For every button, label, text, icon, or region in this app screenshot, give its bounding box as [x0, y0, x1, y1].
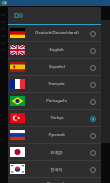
staticText: Español — [49, 64, 65, 70]
button[interactable]: Cancel — [8, 178, 101, 183]
button[interactable]: Português — [8, 93, 101, 109]
staticText: 한국어 — [50, 167, 63, 172]
button[interactable]: Español — [8, 59, 101, 75]
button[interactable]: Türkçe — [8, 110, 101, 126]
button[interactable]: 한국어 — [8, 161, 101, 177]
staticText: English — [49, 47, 64, 53]
staticText: Português — [46, 98, 67, 104]
staticText: 日本語 — [50, 150, 63, 155]
staticText: Français — [48, 81, 65, 87]
staticText: Türkçe — [50, 115, 64, 121]
button[interactable]: 日本語 — [8, 144, 101, 160]
button[interactable]: Français — [8, 76, 101, 92]
staticText: Deutsch(Deutschland) — [35, 30, 79, 36]
button[interactable]: Русский — [8, 127, 101, 143]
staticText: Cancel — [46, 180, 64, 183]
button[interactable]: Deutsch(Deutschland) — [8, 25, 101, 41]
button[interactable]: English — [8, 42, 101, 58]
staticText: Dil — [14, 11, 23, 21]
staticText: Русский — [48, 132, 65, 138]
